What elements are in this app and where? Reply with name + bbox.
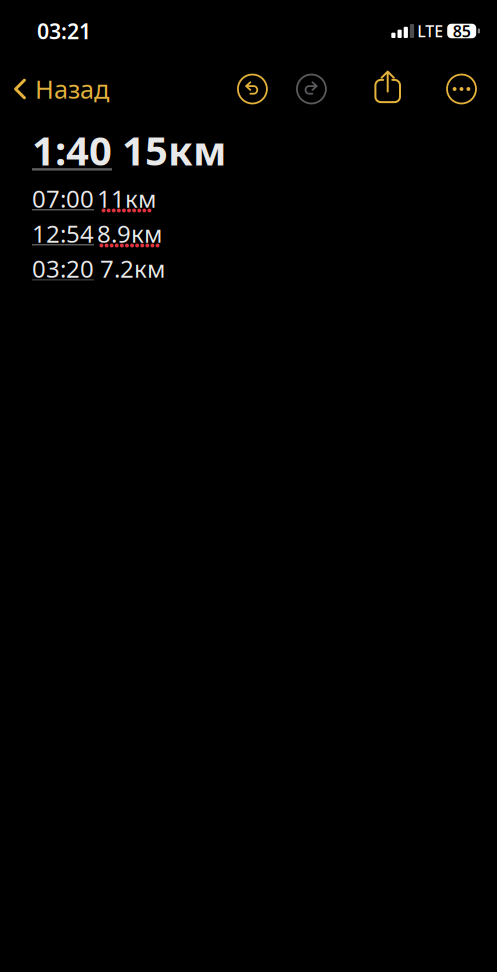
staticText: 1:40 bbox=[32, 123, 112, 176]
button[interactable]: Повторить bbox=[297, 74, 326, 103]
staticText: 03:21 bbox=[37, 17, 91, 45]
staticText: 8.9км bbox=[97, 218, 162, 249]
staticText: 12:54 bbox=[32, 218, 94, 249]
staticText: 03:20 bbox=[32, 253, 94, 284]
button[interactable]: Отменить bbox=[238, 74, 267, 103]
staticText: 7.2км bbox=[94, 253, 165, 284]
staticText: 85 bbox=[453, 20, 471, 42]
staticText: 15км bbox=[112, 123, 226, 176]
staticText: Назад bbox=[35, 72, 109, 106]
staticText: LTE bbox=[417, 20, 443, 42]
staticText: 11км bbox=[97, 183, 156, 214]
button[interactable]: Назад bbox=[0, 64, 119, 114]
button[interactable]: Ещё bbox=[447, 74, 476, 103]
button[interactable]: Поделиться bbox=[375, 73, 400, 105]
staticText: 07:00 bbox=[32, 183, 94, 214]
